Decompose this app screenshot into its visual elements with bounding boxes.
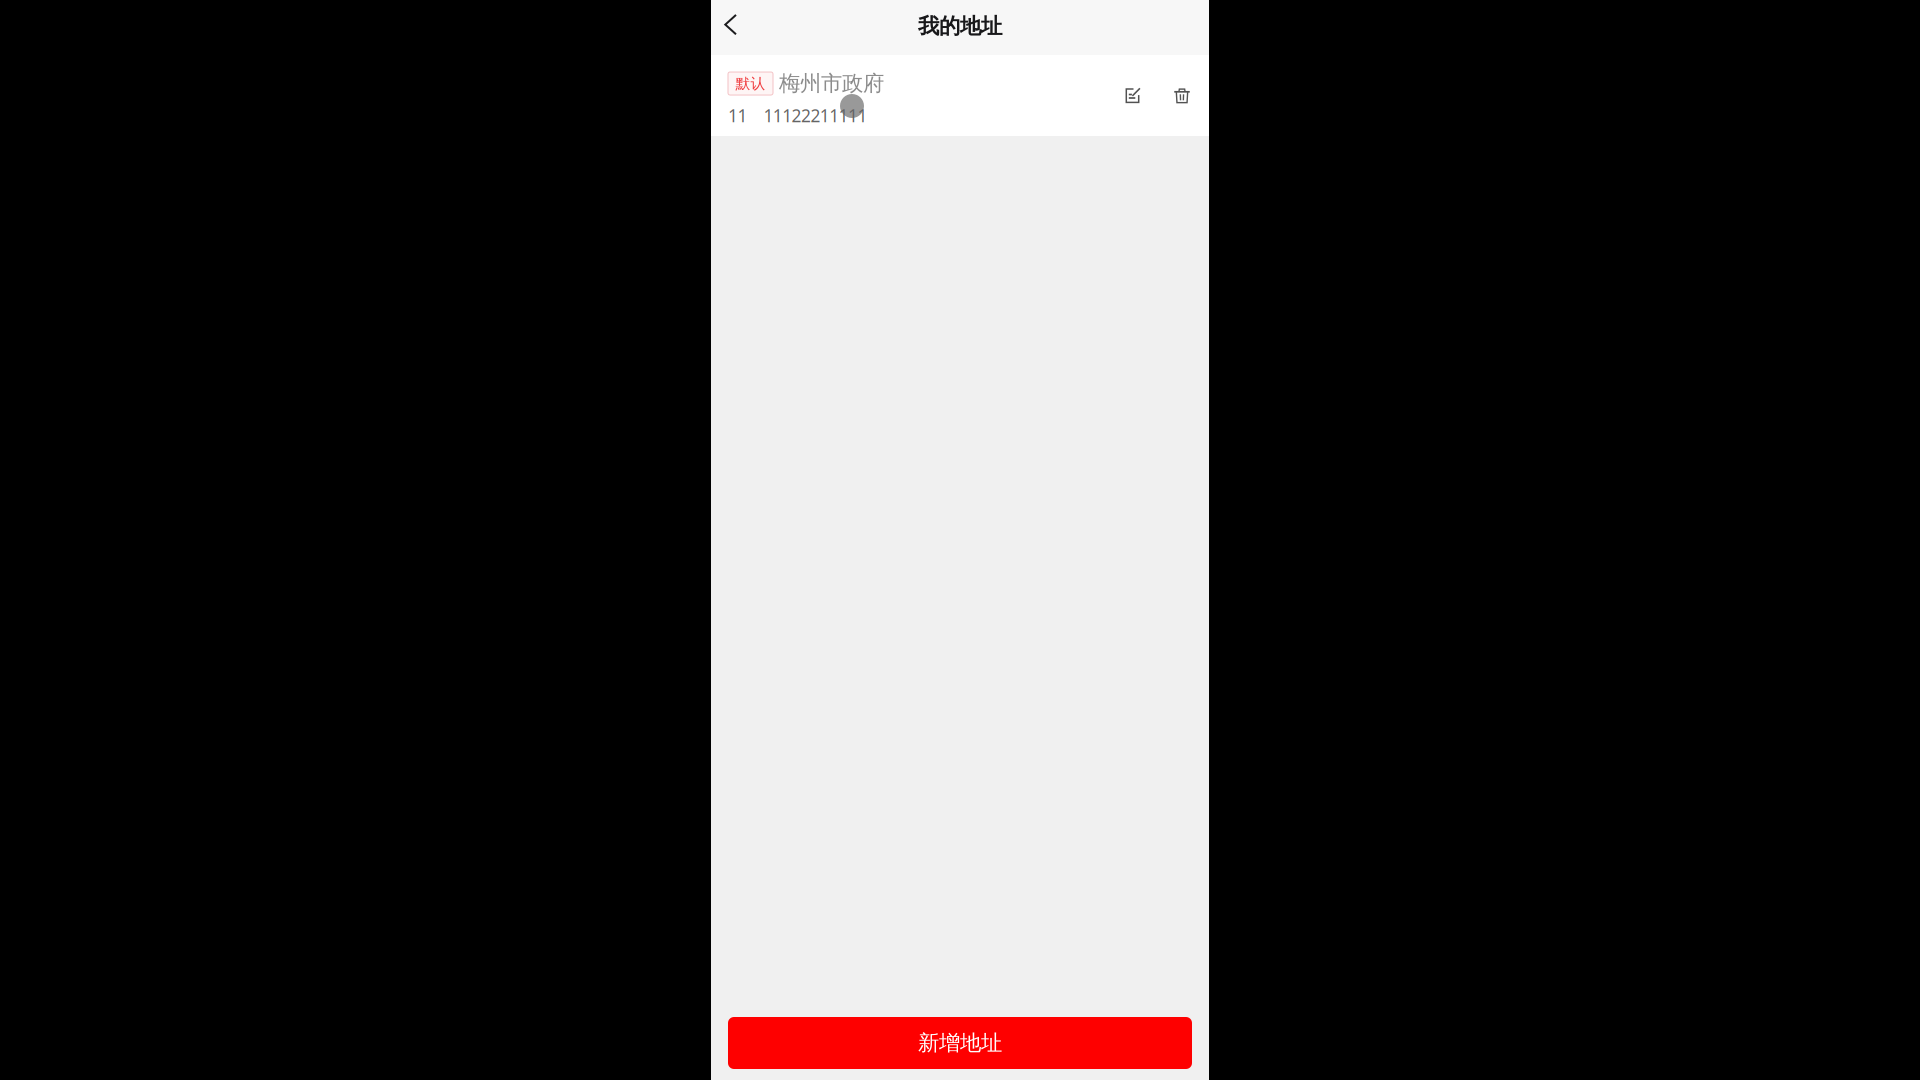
button[interactable]: 默认: [711, 55, 1209, 136]
staticText: 11122211111: [763, 104, 867, 127]
staticText: 我的地址: [918, 13, 1002, 39]
staticText: 11: [728, 104, 747, 127]
staticText: 梅州市政府: [779, 70, 884, 97]
button[interactable]: Back: [711, 0, 757, 55]
button[interactable]: Edit address: [1111, 73, 1155, 117]
button[interactable]: Delete address: [1160, 73, 1204, 117]
button[interactable]: 新增地址: [728, 1017, 1192, 1069]
staticText: 默认: [735, 74, 765, 92]
staticText: 新增地址: [918, 1030, 1002, 1056]
